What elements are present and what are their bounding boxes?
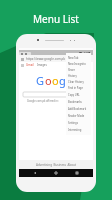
button[interactable]: Copy URL — [68, 91, 89, 98]
staticText: e — [69, 73, 76, 88]
staticText: Bookmarks — [68, 100, 82, 104]
button[interactable]: Share — [68, 67, 89, 73]
staticText: o — [45, 73, 52, 88]
staticText: New Tab — [68, 56, 79, 60]
button[interactable]: Add Bookmark — [68, 105, 89, 112]
staticText: o — [52, 73, 59, 88]
staticText: Share — [68, 68, 75, 72]
button[interactable]: Clear History — [68, 79, 89, 85]
staticText: Reader Mode — [68, 114, 85, 118]
staticText: Menu List — [33, 12, 79, 26]
staticText: l — [66, 73, 69, 88]
button[interactable]: Reader Mode — [68, 112, 89, 119]
staticText: g — [59, 73, 66, 88]
staticText: G — [36, 73, 45, 88]
staticText: New Incognito Tab — [68, 62, 89, 66]
button[interactable]: Bookmarks — [68, 98, 89, 105]
staticText: Find in Page — [68, 86, 83, 90]
staticText: https://www.google.com.pk — [26, 57, 65, 61]
button[interactable]: New Incognito Tab — [68, 61, 89, 67]
staticText: History — [68, 74, 77, 78]
staticText: Google.com.pk offered in: — [27, 99, 59, 103]
staticText: Gmail — [26, 63, 34, 67]
button[interactable]: History — [68, 73, 89, 79]
button[interactable]: Home — [54, 171, 58, 175]
button[interactable]: Interesting Cases — [68, 126, 89, 133]
button[interactable]: Recents — [75, 171, 79, 175]
staticText: Advertising Business About — [36, 163, 77, 167]
button[interactable]: Back — [33, 171, 37, 175]
staticText: Interesting Cases — [68, 128, 89, 132]
button[interactable]: New Tab — [68, 55, 89, 61]
staticText: Clear History — [68, 80, 84, 84]
staticText: Settings — [68, 121, 78, 125]
button[interactable]: Find in Page — [68, 85, 89, 91]
staticText: Add Bookmark — [68, 107, 87, 111]
staticText: Images — [37, 63, 47, 67]
staticText: Copy URL — [68, 93, 80, 97]
button[interactable]: Settings — [68, 119, 89, 126]
